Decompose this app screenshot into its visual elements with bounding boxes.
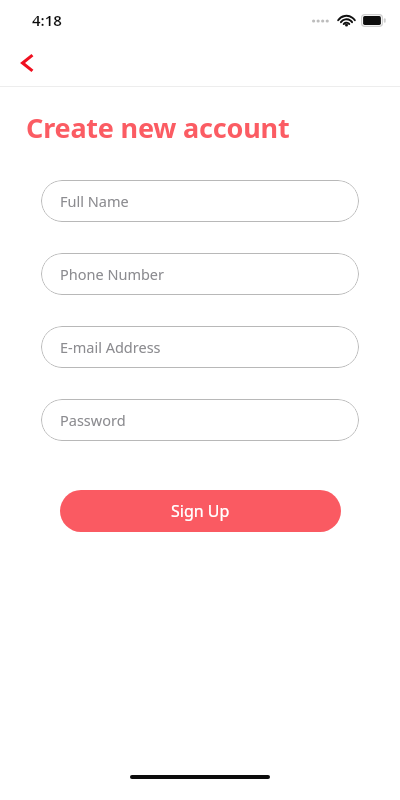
button[interactable]: E-mail Address — [41, 326, 359, 368]
button[interactable]: Full Name — [41, 180, 359, 222]
button[interactable]: Phone Number — [41, 253, 359, 295]
staticText: E-mail Address — [60, 337, 161, 357]
button[interactable]: Password — [41, 399, 359, 441]
staticText: Phone Number — [60, 264, 165, 284]
button[interactable]: Back — [6, 42, 48, 84]
staticText: 4:18 — [32, 10, 62, 30]
button[interactable]: Sign Up — [60, 490, 341, 532]
staticText: Create new account — [26, 109, 290, 146]
staticText: Sign Up — [171, 500, 230, 522]
staticText: Full Name — [60, 191, 129, 211]
staticText: Password — [60, 410, 126, 430]
